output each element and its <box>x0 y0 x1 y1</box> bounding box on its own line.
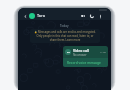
staticText: 🔒 Messages and calls are end-to-end encr… <box>33 30 97 42</box>
staticText: Video call <box>73 48 89 53</box>
button[interactable]: Voice call <box>87 11 96 20</box>
staticText: Record voice message <box>67 61 101 65</box>
staticText: No answer <box>73 53 87 57</box>
staticText: 11:30 <box>100 51 106 54</box>
button[interactable]: Video call <box>65 46 106 58</box>
staticText: Today <box>60 24 69 28</box>
button[interactable]: 🔒 Messages and calls are end-to-end encr… <box>30 29 100 43</box>
staticText: Tara <box>37 13 45 18</box>
button[interactable]: More options <box>96 12 104 20</box>
button[interactable]: Video call <box>78 11 87 20</box>
button[interactable]: Back <box>23 14 27 18</box>
button[interactable]: Record voice message <box>63 58 108 67</box>
